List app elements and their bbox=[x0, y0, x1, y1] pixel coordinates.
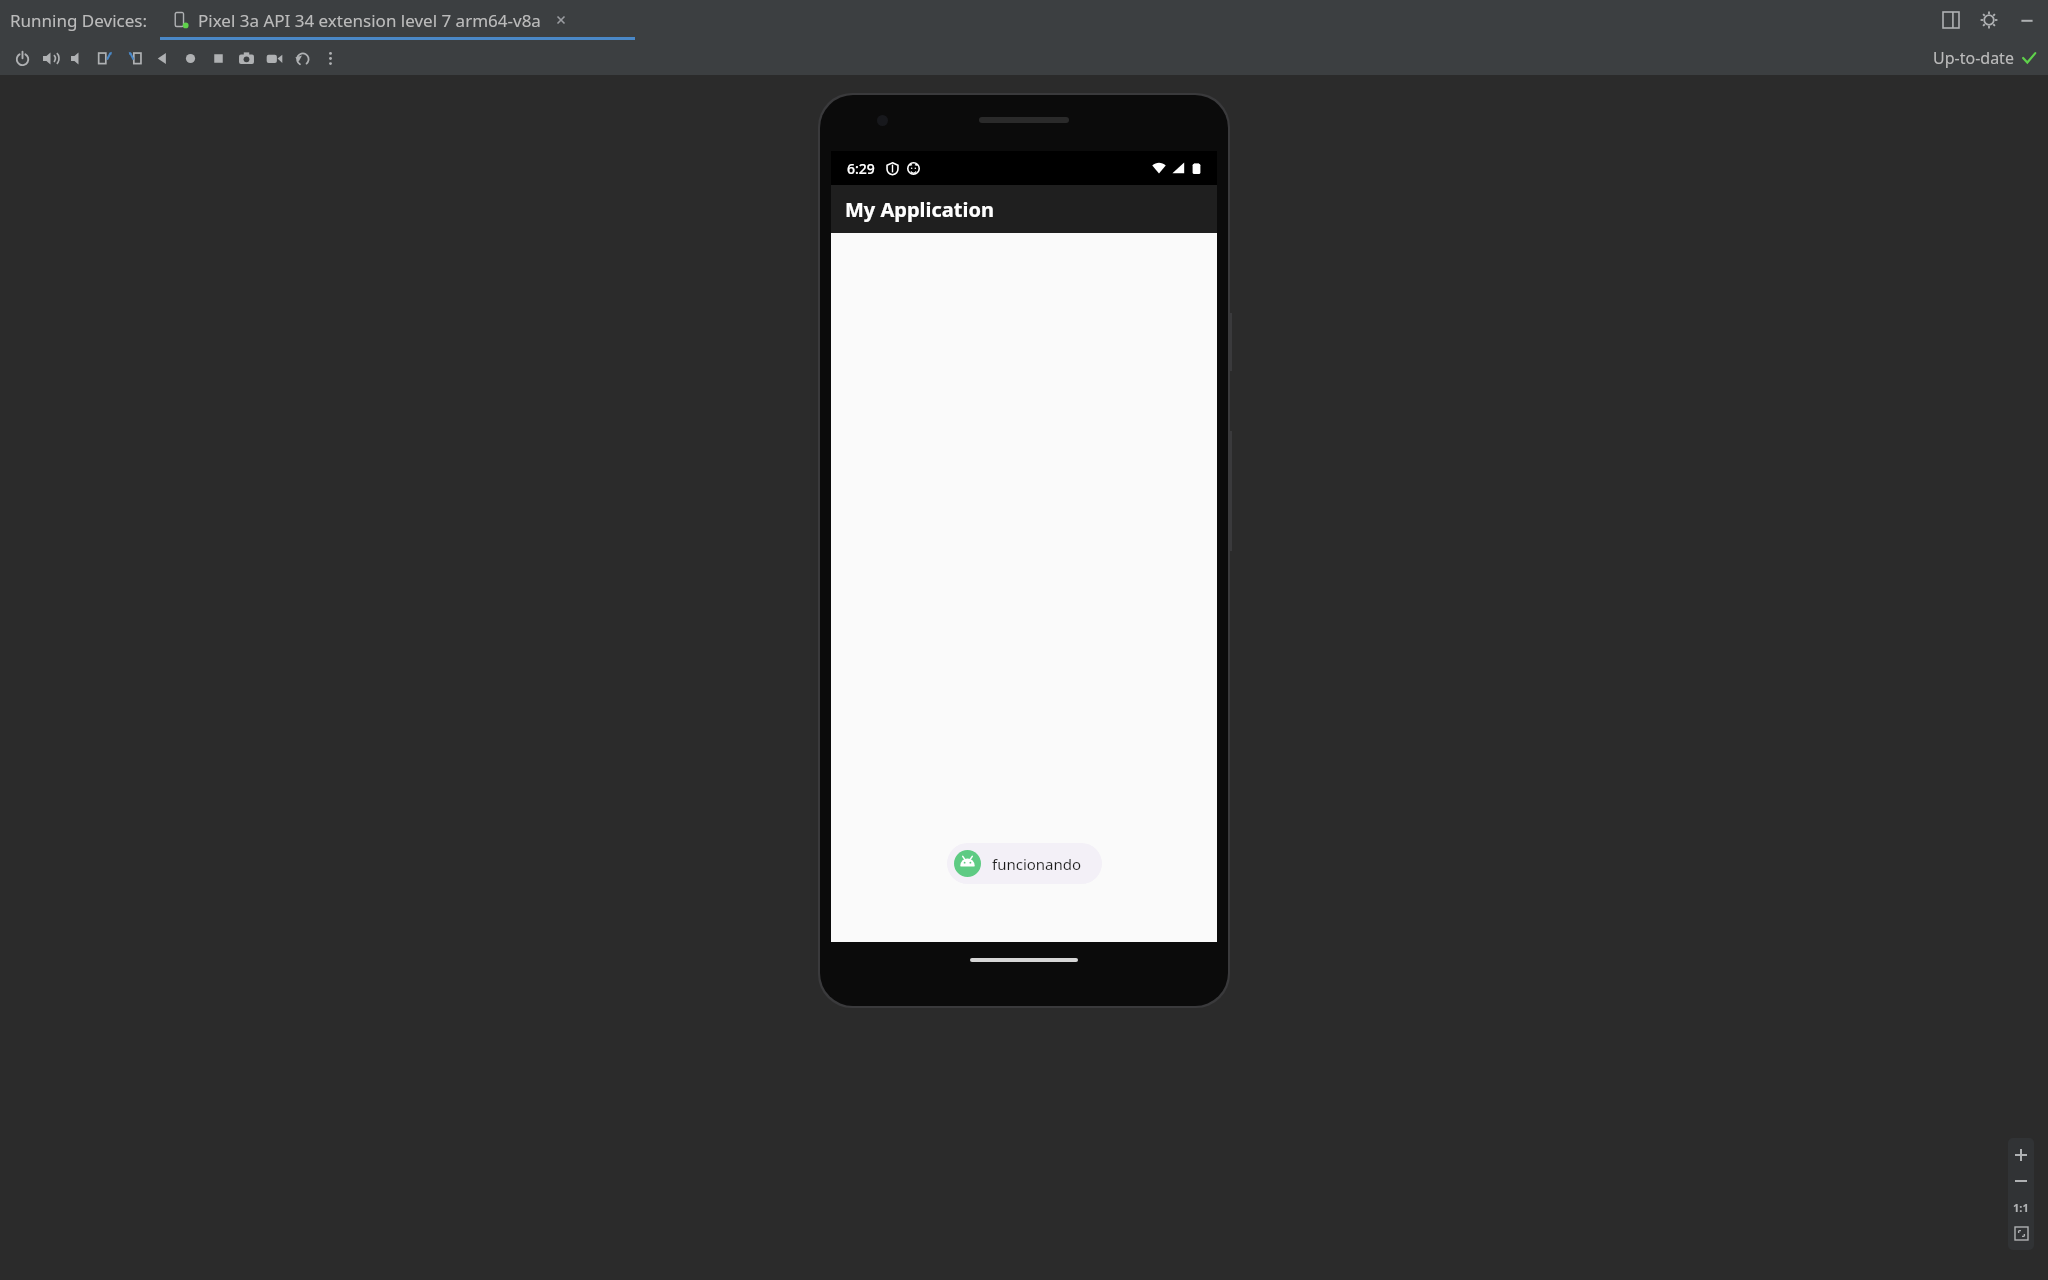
staticText: Up-to-date bbox=[1933, 47, 2014, 69]
button[interactable]: Home bbox=[176, 44, 204, 72]
staticText: Pixel 3a API 34 extension level 7 arm64-… bbox=[198, 9, 541, 32]
button[interactable]: History bbox=[288, 44, 316, 72]
staticText: 6:29 bbox=[847, 159, 875, 178]
button[interactable]: Settings bbox=[1978, 9, 2000, 31]
staticText: My Application bbox=[845, 196, 994, 223]
button[interactable]: Zoom out bbox=[2009, 1169, 2033, 1193]
button[interactable]: Volume down bbox=[64, 44, 92, 72]
staticText: 1:1 bbox=[2013, 1200, 2029, 1215]
button[interactable]: Zoom to fit bbox=[2009, 1221, 2033, 1245]
button[interactable]: Minimize bbox=[2016, 9, 2038, 31]
button[interactable]: Pixel 3a API 34 extension level 7 arm64-… bbox=[160, 0, 581, 40]
button[interactable]: Screenshot bbox=[232, 44, 260, 72]
button[interactable]: More bbox=[316, 44, 344, 72]
button[interactable]: Zoom in bbox=[2009, 1143, 2033, 1167]
button[interactable]: Power bbox=[8, 44, 36, 72]
staticText: funcionando bbox=[992, 854, 1082, 874]
staticText: Running Devices: bbox=[10, 9, 147, 32]
button[interactable]: Close tab bbox=[553, 12, 569, 28]
button[interactable]: Layout options bbox=[1940, 9, 1962, 31]
button[interactable]: Rotate left bbox=[92, 44, 120, 72]
button[interactable]: funcionando bbox=[947, 843, 1102, 884]
button[interactable]: Volume up bbox=[36, 44, 64, 72]
button[interactable]: 1:1 bbox=[2009, 1195, 2033, 1219]
button[interactable]: Back bbox=[148, 44, 176, 72]
button[interactable]: Overview bbox=[204, 44, 232, 72]
button[interactable]: Record screen bbox=[260, 44, 288, 72]
button[interactable]: Rotate right bbox=[120, 44, 148, 72]
